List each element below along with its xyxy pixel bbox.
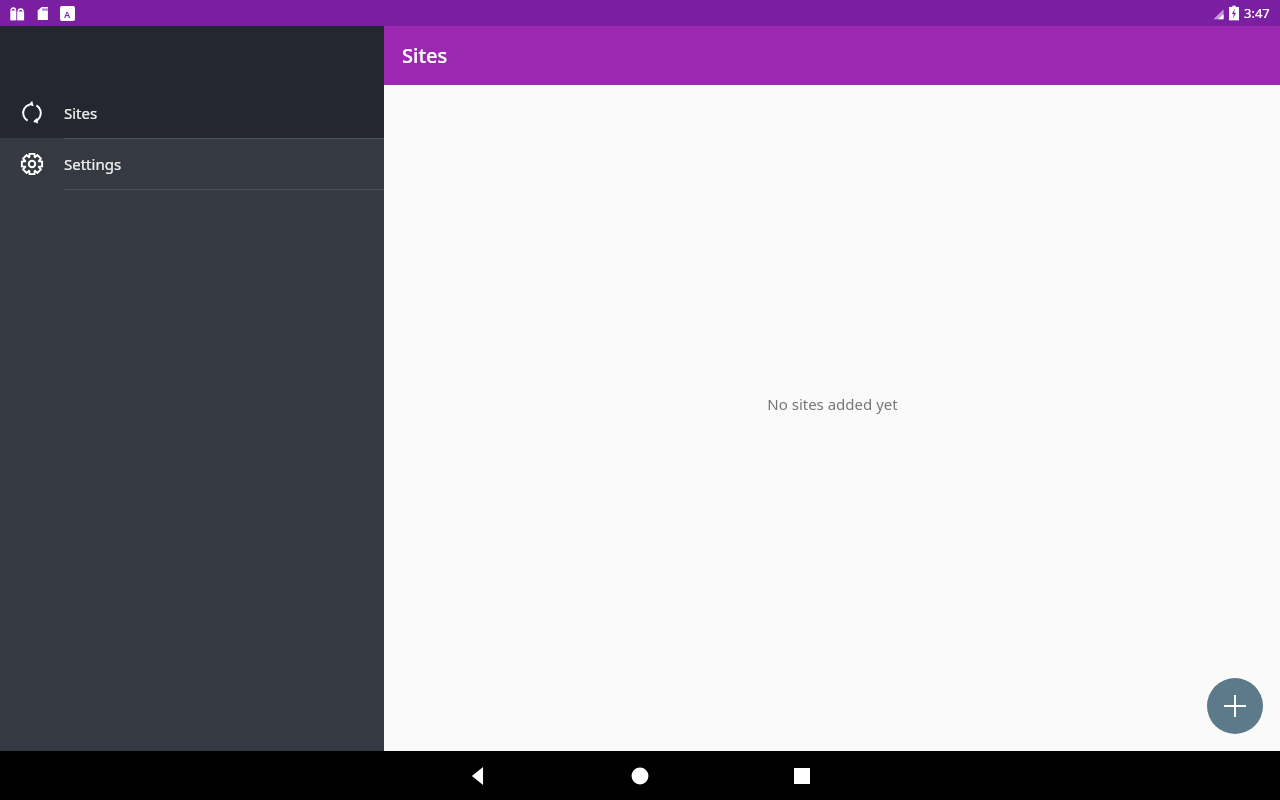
staticText: Sites: [402, 42, 448, 69]
button[interactable]: Settings: [0, 139, 384, 190]
button[interactable]: Home: [559, 751, 721, 800]
button[interactable]: Recents: [721, 751, 883, 800]
staticText: Sites: [64, 103, 98, 123]
button[interactable]: Sites: [0, 88, 384, 138]
staticText: A: [64, 8, 71, 20]
staticText: Settings: [64, 154, 122, 174]
button[interactable]: Add site: [1207, 678, 1263, 734]
other: Settings: [19, 151, 45, 177]
staticText: No sites added yet: [767, 394, 898, 414]
button[interactable]: Back: [397, 751, 559, 800]
other: Sites: [19, 100, 45, 126]
staticText: 3:47: [1244, 4, 1270, 22]
